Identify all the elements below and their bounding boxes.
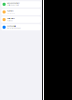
button[interactable]: Paiement [1, 9, 41, 15]
staticText: Notifications [7, 18, 15, 19]
staticText: Carte 4242 [7, 12, 15, 14]
staticText: Confidentialite [7, 25, 16, 27]
staticText: Actif jusqu'au 12 juin [7, 4, 19, 6]
staticText: Activees [7, 20, 13, 22]
staticText: Gerer les donnees [7, 27, 21, 29]
button[interactable]: Confidentialite [1, 24, 41, 30]
staticText: Mon Abonnement [7, 2, 19, 4]
button[interactable]: Mon Abonnement [1, 1, 41, 7]
button[interactable]: Notifications [1, 16, 41, 23]
staticText: Paiement [7, 10, 13, 12]
